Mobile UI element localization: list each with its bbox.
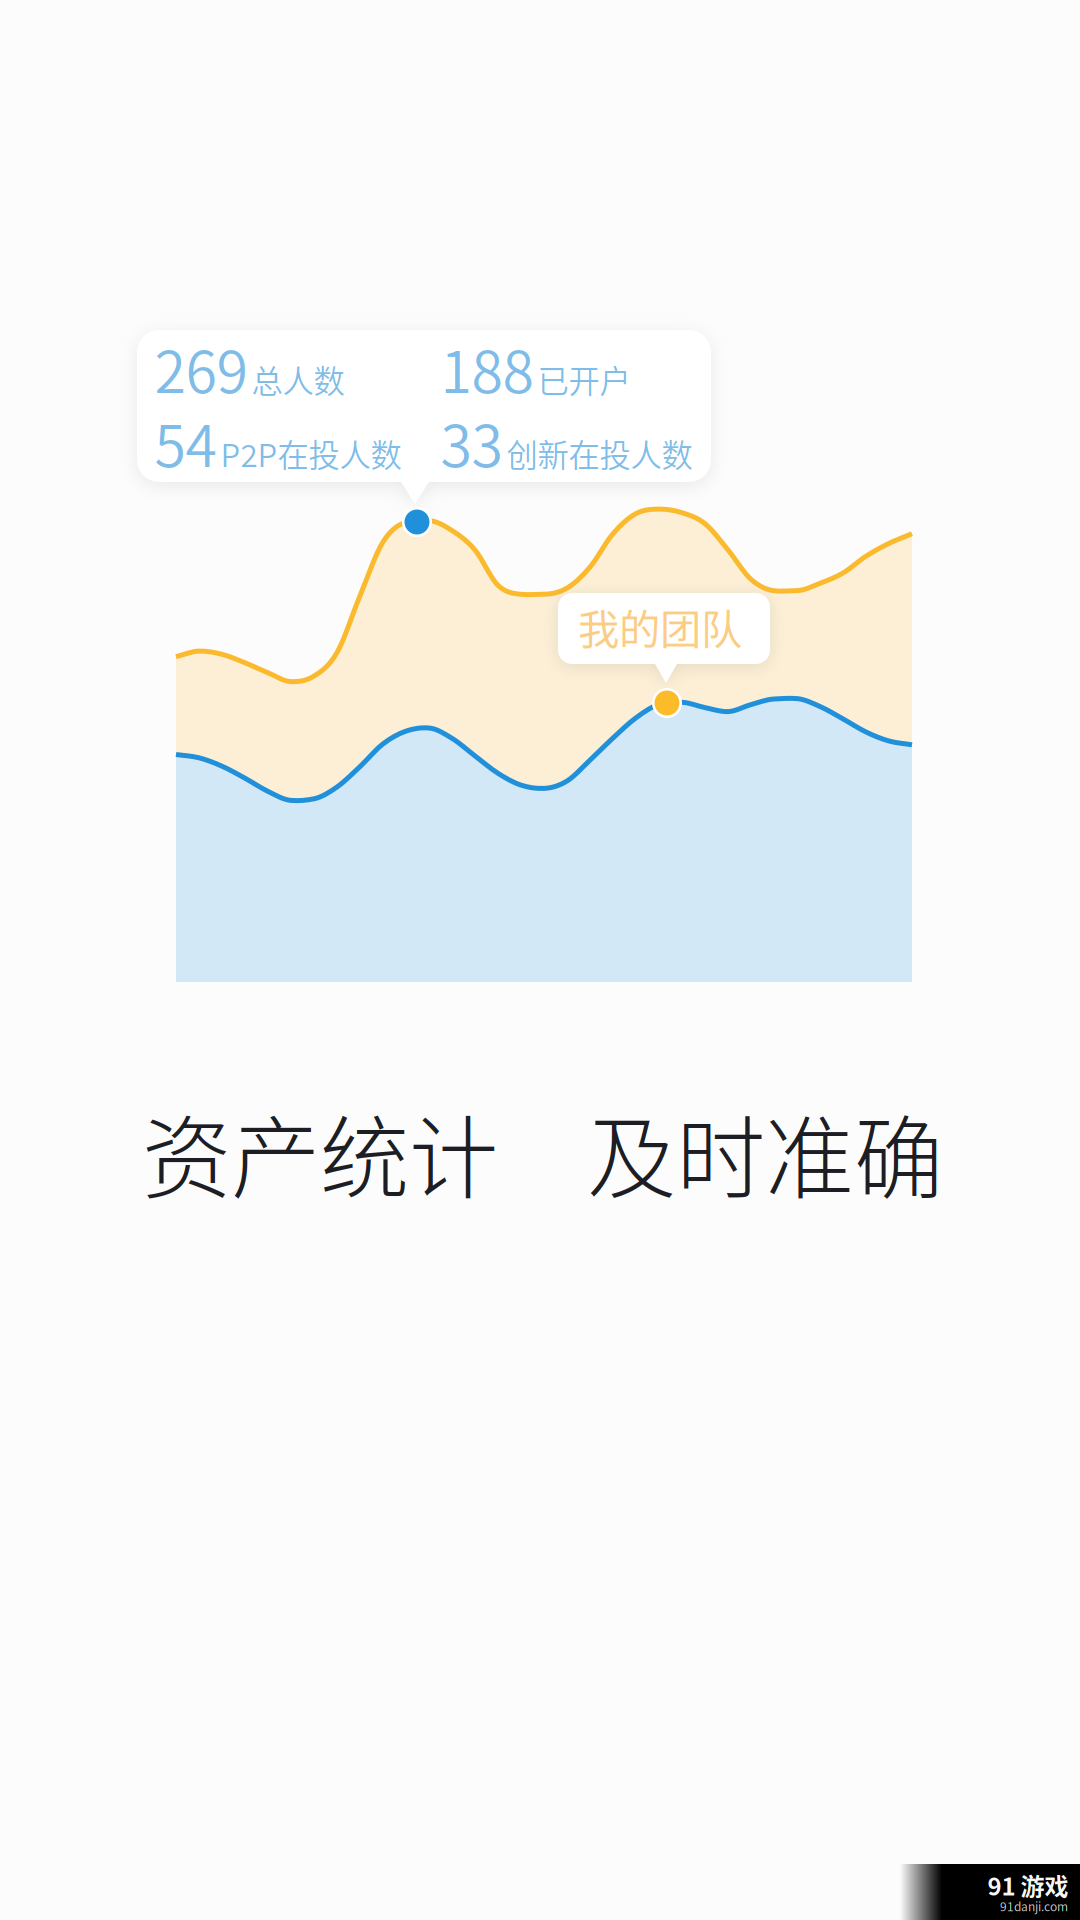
staticText: 33 (440, 400, 502, 483)
staticText: 91 游戏 (987, 1868, 1068, 1902)
button[interactable]: 我的团队 (558, 593, 770, 683)
staticText: 91danji.com (1000, 1897, 1068, 1915)
staticText: 创新在投人数 (506, 431, 692, 476)
staticText: P2P在投人数 (220, 431, 401, 476)
staticText: 我的团队 (578, 597, 742, 656)
staticText: 269 (154, 326, 247, 409)
staticText: 54 (154, 400, 216, 483)
button[interactable]: 269 (137, 330, 711, 504)
staticText: 总人数 (251, 357, 344, 402)
staticText: 188 (440, 326, 533, 409)
staticText: 已开户 (537, 357, 630, 402)
staticText: 资产统计 及时准确 (142, 1087, 943, 1217)
